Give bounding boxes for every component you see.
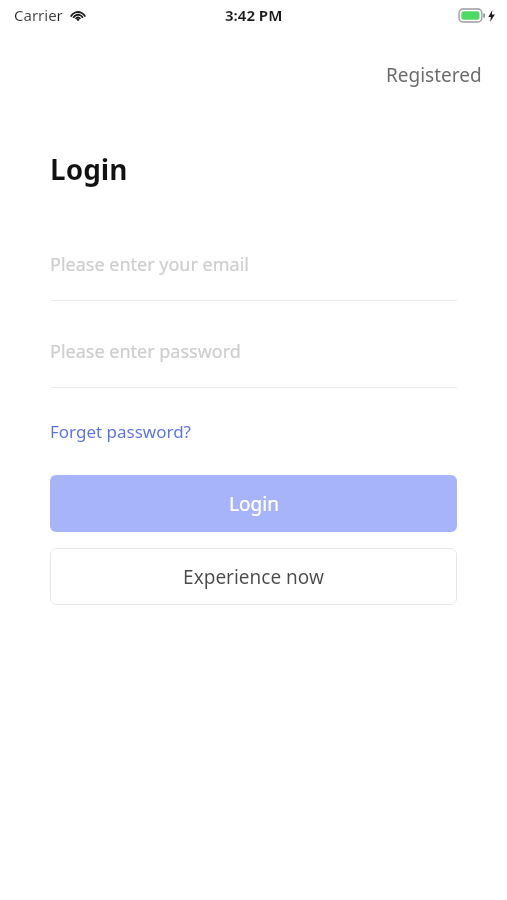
staticText: Experience now — [183, 564, 324, 590]
staticText: Please enter password — [50, 339, 241, 364]
button[interactable]: Please enter your email — [50, 248, 457, 280]
staticText: Please enter your email — [50, 252, 249, 277]
button[interactable]: Forget password? — [50, 416, 191, 447]
staticText: Forget password? — [50, 420, 191, 443]
staticText: Carrier — [14, 5, 63, 25]
button[interactable]: Registered — [361, 56, 507, 94]
button[interactable]: Please enter password — [50, 335, 457, 367]
staticText: Login — [229, 491, 279, 517]
staticText: 3:42 PM — [225, 5, 283, 25]
staticText: Registered — [386, 62, 482, 88]
staticText: Login — [50, 150, 128, 188]
button[interactable]: Login — [50, 475, 457, 532]
button[interactable]: Experience now — [50, 548, 457, 605]
